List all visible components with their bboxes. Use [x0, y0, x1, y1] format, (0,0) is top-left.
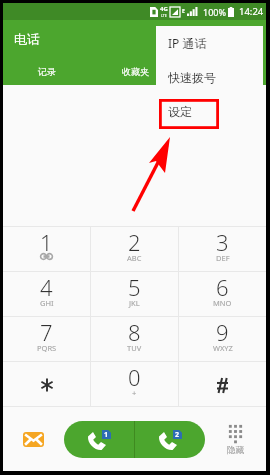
button[interactable]: 1 [3, 227, 90, 271]
staticText: 6 [216, 272, 229, 302]
button[interactable] [3, 362, 90, 406]
staticText: 8 [128, 317, 141, 347]
staticText: 2 [175, 430, 180, 439]
staticText: 1 [40, 227, 53, 257]
staticText: JKL [129, 298, 140, 308]
button[interactable]: 设定 [156, 94, 263, 128]
button[interactable]: 4 [3, 272, 90, 316]
staticText: 3 [216, 227, 229, 257]
button[interactable]: 8 [91, 317, 178, 361]
staticText: 记录 [38, 66, 56, 77]
staticText: ABC [127, 253, 142, 263]
staticText: E [182, 8, 185, 15]
staticText: 0 [128, 362, 141, 392]
staticText: 收藏夹 [122, 66, 149, 77]
staticText: PQRS [37, 343, 57, 353]
button[interactable]: 2 [91, 227, 178, 271]
staticText: 5 [128, 272, 141, 302]
staticText: 14:24 [239, 5, 264, 18]
staticText: DEF [216, 253, 230, 263]
button[interactable]: IP 通话 [156, 26, 263, 60]
staticText: 隐藏 [227, 445, 244, 456]
staticText: GHI [40, 298, 54, 308]
staticText: + [132, 388, 137, 398]
staticText: 4 [40, 272, 53, 302]
button[interactable]: Message [3, 407, 64, 471]
staticText: WXYZ [213, 343, 233, 353]
staticText: 7 [40, 317, 53, 347]
button[interactable]: 3 [179, 227, 266, 271]
button[interactable]: 9 [179, 317, 266, 361]
button[interactable]: 收藏夹 [91, 57, 179, 85]
button[interactable]: 快速拨号 [156, 60, 263, 94]
button[interactable]: 6 [179, 272, 266, 316]
button[interactable]: 记录 [3, 57, 91, 85]
staticText: 快速拨号 [168, 70, 216, 85]
button[interactable] [179, 362, 266, 406]
button[interactable]: Call with SIM 1 [64, 421, 134, 458]
staticText: 设定 [168, 104, 192, 119]
staticText: LTE [161, 13, 167, 18]
button[interactable]: Hide keypad [205, 407, 266, 471]
staticText: MNO [213, 298, 232, 308]
button[interactable]: Call with SIM 2 [135, 421, 205, 458]
button[interactable]: 7 [3, 317, 90, 361]
staticText: TUV [127, 343, 142, 353]
staticText: 4G [160, 5, 168, 13]
staticText: 1 [104, 430, 109, 439]
staticText: 9 [216, 317, 229, 347]
staticText: 100% [203, 6, 226, 18]
staticText: IP 通话 [168, 35, 207, 51]
staticText: 电话 [14, 31, 40, 47]
button[interactable]: 5 [91, 272, 178, 316]
staticText: 2 [128, 227, 141, 257]
button[interactable]: 0 [91, 362, 178, 406]
